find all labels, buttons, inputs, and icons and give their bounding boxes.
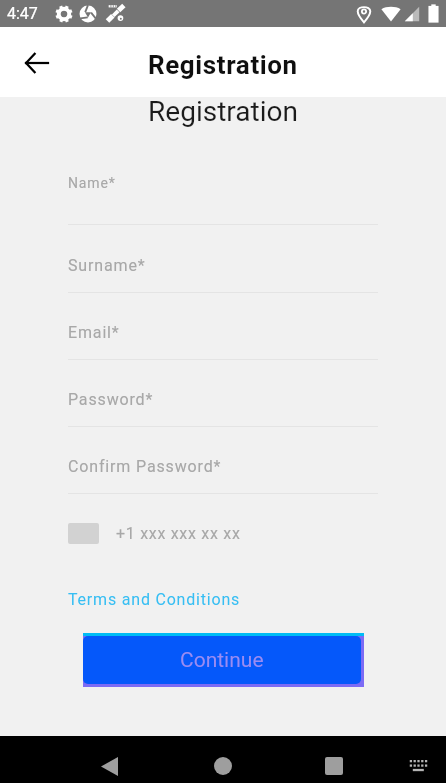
button[interactable]: Back <box>14 40 58 84</box>
staticText: +1 xxx xxx xx xx <box>116 524 241 543</box>
staticText: Registration <box>0 95 446 128</box>
staticText: Confirm Password* <box>68 457 222 476</box>
button[interactable]: Keyboard <box>400 750 436 782</box>
button[interactable]: Terms and Conditions <box>68 590 241 609</box>
button[interactable]: Continue <box>83 636 361 684</box>
button[interactable]: Surname* <box>0 237 446 293</box>
button[interactable]: Recent apps <box>312 744 356 783</box>
button[interactable]: Confirm Password* <box>0 438 446 494</box>
staticText: Terms and Conditions <box>68 590 241 609</box>
staticText: Registration <box>148 50 298 80</box>
button[interactable]: Name* <box>0 169 446 225</box>
staticText: Name* <box>68 175 116 191</box>
button[interactable]: Password* <box>0 371 446 427</box>
staticText: Continue <box>180 648 264 673</box>
button[interactable]: +1 xxx xxx xx xx <box>68 520 241 546</box>
staticText: Email* <box>68 323 120 342</box>
button[interactable]: Email* <box>0 304 446 360</box>
staticText: Surname* <box>68 256 146 275</box>
button[interactable]: Home <box>201 744 245 783</box>
staticText: Password* <box>68 390 154 409</box>
button[interactable]: Back <box>87 744 131 783</box>
staticText: 4:47 <box>7 4 38 23</box>
